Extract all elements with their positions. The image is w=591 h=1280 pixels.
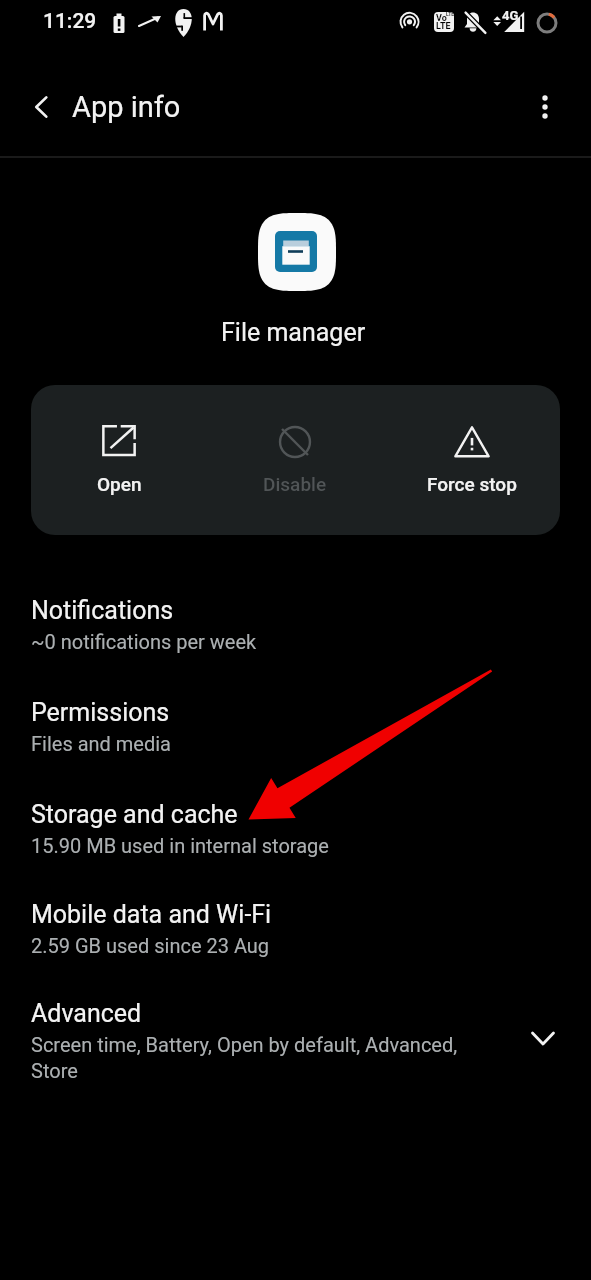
staticText: Storage and cache [31, 800, 238, 829]
staticText: Open [97, 473, 142, 495]
button[interactable]: More options [519, 81, 571, 133]
staticText: Mobile data and Wi-Fi [31, 900, 272, 929]
button[interactable]: App info [72, 0, 352, 156]
staticText: Vo [436, 13, 447, 24]
button[interactable]: Storage and cache [0, 783, 591, 884]
staticText: 11:29 [43, 9, 97, 34]
staticText: Files and media [31, 732, 171, 755]
staticText: Force stop [427, 473, 517, 495]
button[interactable]: Force stop [384, 385, 560, 535]
staticText: ~0 notifications per week [31, 630, 257, 653]
staticText: File manager [221, 318, 366, 347]
staticText: LTE [446, 12, 454, 17]
staticText: 2.59 GB used since 23 Aug [31, 934, 270, 957]
staticText: LTE [436, 21, 451, 32]
staticText: Advanced [31, 999, 142, 1028]
staticText: Permissions [31, 698, 170, 727]
button[interactable]: Notifications [0, 581, 591, 682]
staticText: Disable [263, 473, 327, 495]
button[interactable]: Open [31, 385, 207, 535]
button[interactable]: Advanced [0, 985, 591, 1095]
staticText: 4G [502, 8, 519, 23]
staticText: Screen time, Battery, Open by default, A… [31, 1033, 481, 1082]
staticText: Notifications [31, 596, 174, 625]
button[interactable]: Permissions [0, 682, 591, 783]
staticText: App info [72, 90, 181, 124]
button[interactable]: Mobile data and Wi-Fi [0, 884, 591, 985]
staticText: 15.90 MB used in internal storage [31, 834, 329, 857]
button[interactable]: Back [14, 81, 66, 133]
button[interactable]: Disable [207, 385, 383, 535]
